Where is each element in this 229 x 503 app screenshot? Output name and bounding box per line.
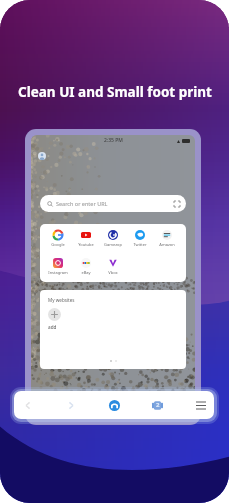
button[interactable]: Back	[20, 391, 35, 419]
button[interactable]: Add website	[48, 308, 61, 321]
button[interactable]: Search or enter URL	[40, 195, 186, 212]
staticText: Gamezop	[104, 242, 122, 247]
staticText: Vbox	[108, 270, 118, 275]
staticText: Youtube	[78, 242, 94, 247]
staticText: Twitter	[133, 242, 147, 247]
button[interactable]: Vbox	[99, 258, 126, 275]
button[interactable]: Forward	[63, 391, 78, 419]
staticText: add	[48, 324, 57, 330]
button[interactable]: Amazon	[153, 230, 180, 247]
staticText: eBay	[81, 270, 91, 275]
button[interactable]: Instagram	[44, 258, 72, 275]
staticText: Amazon	[159, 242, 175, 247]
staticText: Clean UI and Small foot print	[18, 83, 212, 101]
staticText: 2:35 PM	[104, 137, 123, 144]
button[interactable]: Youtube	[72, 230, 99, 247]
staticText: 2	[156, 401, 160, 409]
button[interactable]: Gamezop	[99, 230, 126, 247]
button[interactable]: Google	[44, 230, 72, 247]
button[interactable]: Home	[107, 391, 122, 419]
staticText: Google	[51, 242, 65, 247]
staticText: Search or enter URL	[56, 200, 108, 207]
button[interactable]: eBay	[72, 258, 99, 275]
button[interactable]: Twitter	[126, 230, 153, 247]
button[interactable]: Tabs	[150, 391, 165, 419]
button[interactable]: Profile	[38, 152, 46, 160]
staticText: Instagram	[48, 270, 68, 275]
staticText: My websites	[48, 297, 75, 303]
button[interactable]: Menu	[193, 391, 208, 419]
